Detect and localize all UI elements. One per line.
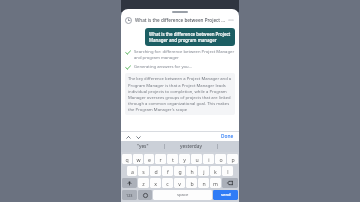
staticText: b xyxy=(190,180,194,187)
button[interactable]: g xyxy=(174,166,185,176)
staticText: What is the difference between Project M… xyxy=(149,31,231,43)
button[interactable]: w xyxy=(133,154,143,164)
staticText: "yes" xyxy=(137,143,149,150)
button[interactable]: The key difference between a Project Man… xyxy=(125,73,235,115)
button[interactable]: z xyxy=(138,178,149,188)
staticText: m xyxy=(213,180,218,187)
button[interactable]: i xyxy=(203,154,214,164)
button[interactable]: v xyxy=(174,178,185,188)
button[interactable]: q xyxy=(122,154,132,164)
staticText: Generating answers for you... xyxy=(134,64,235,70)
button[interactable]: What is the difference between Project M… xyxy=(145,28,235,46)
staticText: f xyxy=(167,168,169,175)
button[interactable]: n xyxy=(198,178,209,188)
staticText: Searching for: difference between Projec… xyxy=(134,49,235,61)
staticText: What is the difference between Project M… xyxy=(135,17,225,23)
staticText: v xyxy=(178,180,181,187)
staticText: d xyxy=(154,168,158,175)
staticText: p xyxy=(231,156,235,163)
staticText: g xyxy=(178,168,182,175)
button[interactable]: Backspace xyxy=(222,178,238,188)
button[interactable]: f xyxy=(162,166,173,176)
staticText: j xyxy=(203,168,205,175)
button[interactable]: m xyxy=(210,178,221,188)
button[interactable]: o xyxy=(215,154,226,164)
button[interactable]: p xyxy=(227,154,238,164)
staticText: t xyxy=(172,156,174,163)
button[interactable]: "yes" xyxy=(121,141,164,152)
staticText: z xyxy=(142,180,145,187)
staticText: c xyxy=(166,180,169,187)
staticText: h xyxy=(190,168,194,175)
staticText: k xyxy=(214,168,217,175)
staticText: 123 xyxy=(126,193,133,198)
staticText: s xyxy=(142,168,145,175)
staticText: l xyxy=(227,168,229,175)
staticText: q xyxy=(125,156,129,163)
button[interactable]: x xyxy=(150,178,161,188)
button[interactable]: Done xyxy=(219,132,236,141)
button[interactable]: yesterday xyxy=(165,141,217,152)
button[interactable]: b xyxy=(186,178,197,188)
button[interactable]: e xyxy=(144,154,154,164)
staticText: w xyxy=(136,156,141,163)
button[interactable]: More options xyxy=(227,16,235,24)
button[interactable]: j xyxy=(198,166,209,176)
button[interactable]: d xyxy=(150,166,161,176)
staticText: o xyxy=(219,156,223,163)
button[interactable]: Emoji xyxy=(138,190,152,200)
staticText: u xyxy=(195,156,199,163)
button[interactable]: c xyxy=(162,178,173,188)
staticText: send xyxy=(221,192,231,198)
staticText: yesterday xyxy=(180,143,202,150)
staticText: r xyxy=(159,156,162,163)
staticText: a xyxy=(131,168,134,175)
button[interactable]: send xyxy=(213,190,238,200)
staticText: Done xyxy=(221,133,234,140)
button[interactable]: Shift xyxy=(122,178,137,188)
button[interactable]: a xyxy=(127,166,137,176)
button[interactable]: Previous field xyxy=(124,133,132,141)
staticText: n xyxy=(202,180,206,187)
staticText: i xyxy=(208,156,210,163)
button[interactable]: r xyxy=(155,154,166,164)
staticText: y xyxy=(183,156,186,163)
staticText: e xyxy=(148,156,151,163)
button[interactable]: What is the difference between Project M… xyxy=(121,14,239,26)
staticText: The key difference between a Project Man… xyxy=(128,76,232,112)
button[interactable]: l xyxy=(222,166,233,176)
button[interactable]: t xyxy=(167,154,178,164)
button[interactable]: space xyxy=(153,190,212,200)
staticText: x xyxy=(154,180,157,187)
button[interactable]: Next field xyxy=(134,133,142,141)
button[interactable]: 123 xyxy=(122,190,137,200)
staticText: space xyxy=(177,192,189,198)
button[interactable]: h xyxy=(186,166,197,176)
button[interactable]: s xyxy=(138,166,149,176)
button[interactable]: u xyxy=(191,154,202,164)
button[interactable]: y xyxy=(179,154,190,164)
button[interactable]: k xyxy=(210,166,221,176)
